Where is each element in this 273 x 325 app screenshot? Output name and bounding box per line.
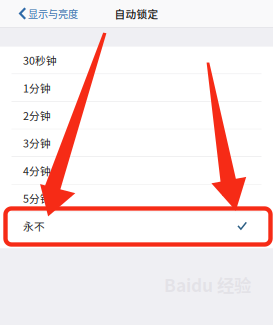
staticText: 4分钟 [23, 163, 51, 178]
staticText: 30秒钟 [23, 52, 57, 68]
button[interactable]: 30秒钟 [0, 47, 273, 74]
button[interactable]: 5分钟 [0, 185, 273, 212]
button[interactable]: 3分钟 [0, 129, 273, 156]
button[interactable]: 显示与亮度 [0, 0, 72, 27]
staticText: 2分钟 [23, 108, 51, 123]
staticText: 5分钟 [23, 190, 51, 206]
button[interactable]: 永不 [0, 212, 273, 239]
staticText: Baidu 经验 [164, 272, 251, 297]
staticText: 永不 [23, 218, 45, 233]
staticText: 1分钟 [23, 80, 51, 95]
staticText: 显示与亮度 [28, 6, 78, 21]
button[interactable]: 4分钟 [0, 157, 273, 184]
button[interactable]: 2分钟 [0, 102, 273, 129]
button[interactable]: 1分钟 [0, 74, 273, 101]
staticText: 3分钟 [23, 135, 51, 151]
staticText: 自动锁定 [114, 6, 158, 21]
